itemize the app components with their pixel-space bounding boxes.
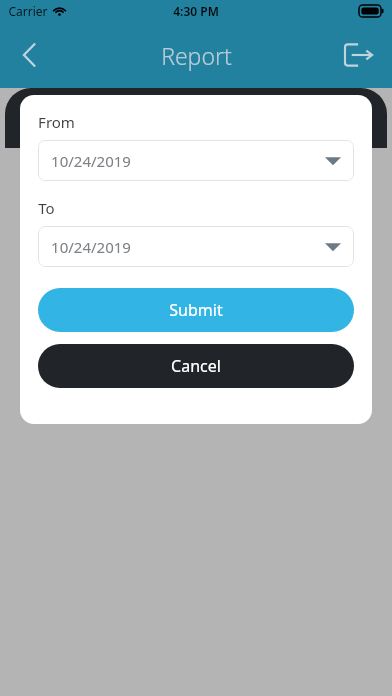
button[interactable]: Submit <box>38 288 354 332</box>
staticText: 10/24/2019 <box>51 237 131 257</box>
button[interactable]: 10/24/2019 <box>38 140 354 181</box>
button[interactable]: Log out <box>336 32 382 78</box>
button[interactable]: Cancel <box>38 344 354 388</box>
staticText: 4:30 PM <box>173 3 219 19</box>
staticText: From <box>38 112 75 132</box>
staticText: Submit <box>169 299 223 321</box>
button[interactable]: Back <box>6 31 54 79</box>
staticText: 10/24/2019 <box>51 151 131 171</box>
staticText: Cancel <box>171 355 221 377</box>
staticText: Carrier <box>8 3 48 19</box>
staticText: To <box>38 198 55 218</box>
button[interactable]: 10/24/2019 <box>38 226 354 267</box>
staticText: Report <box>161 40 232 71</box>
